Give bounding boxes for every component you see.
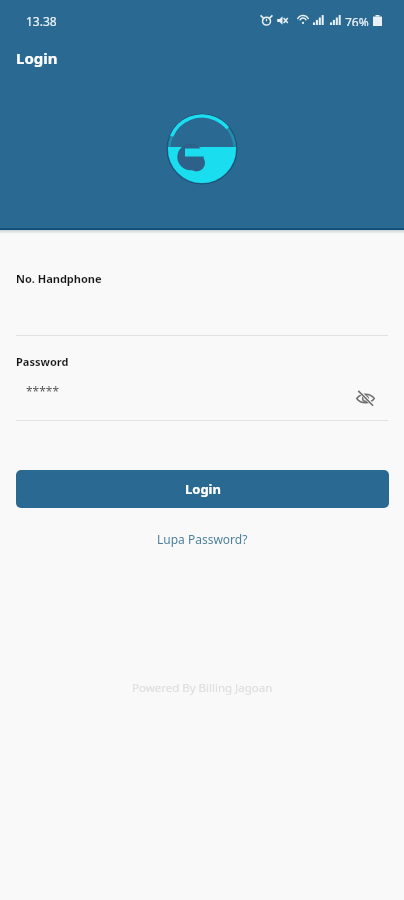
button[interactable]: No. Handphone (16, 262, 388, 336)
button[interactable]: Lupa Password? (147, 526, 258, 552)
button[interactable]: Login (16, 470, 389, 508)
button[interactable]: Password (16, 345, 388, 421)
staticText: Password (16, 354, 69, 369)
staticText: Login (185, 480, 221, 498)
staticText: Login (16, 48, 58, 68)
staticText: ***** (26, 383, 60, 399)
staticText: Lupa Password? (157, 531, 248, 547)
staticText: No. Handphone (16, 271, 102, 286)
staticText: 13.38 (26, 13, 57, 29)
staticText: 76% (345, 14, 369, 26)
staticText: Powered By Billing Jagoan (132, 680, 273, 696)
button[interactable]: Show password (349, 382, 381, 414)
